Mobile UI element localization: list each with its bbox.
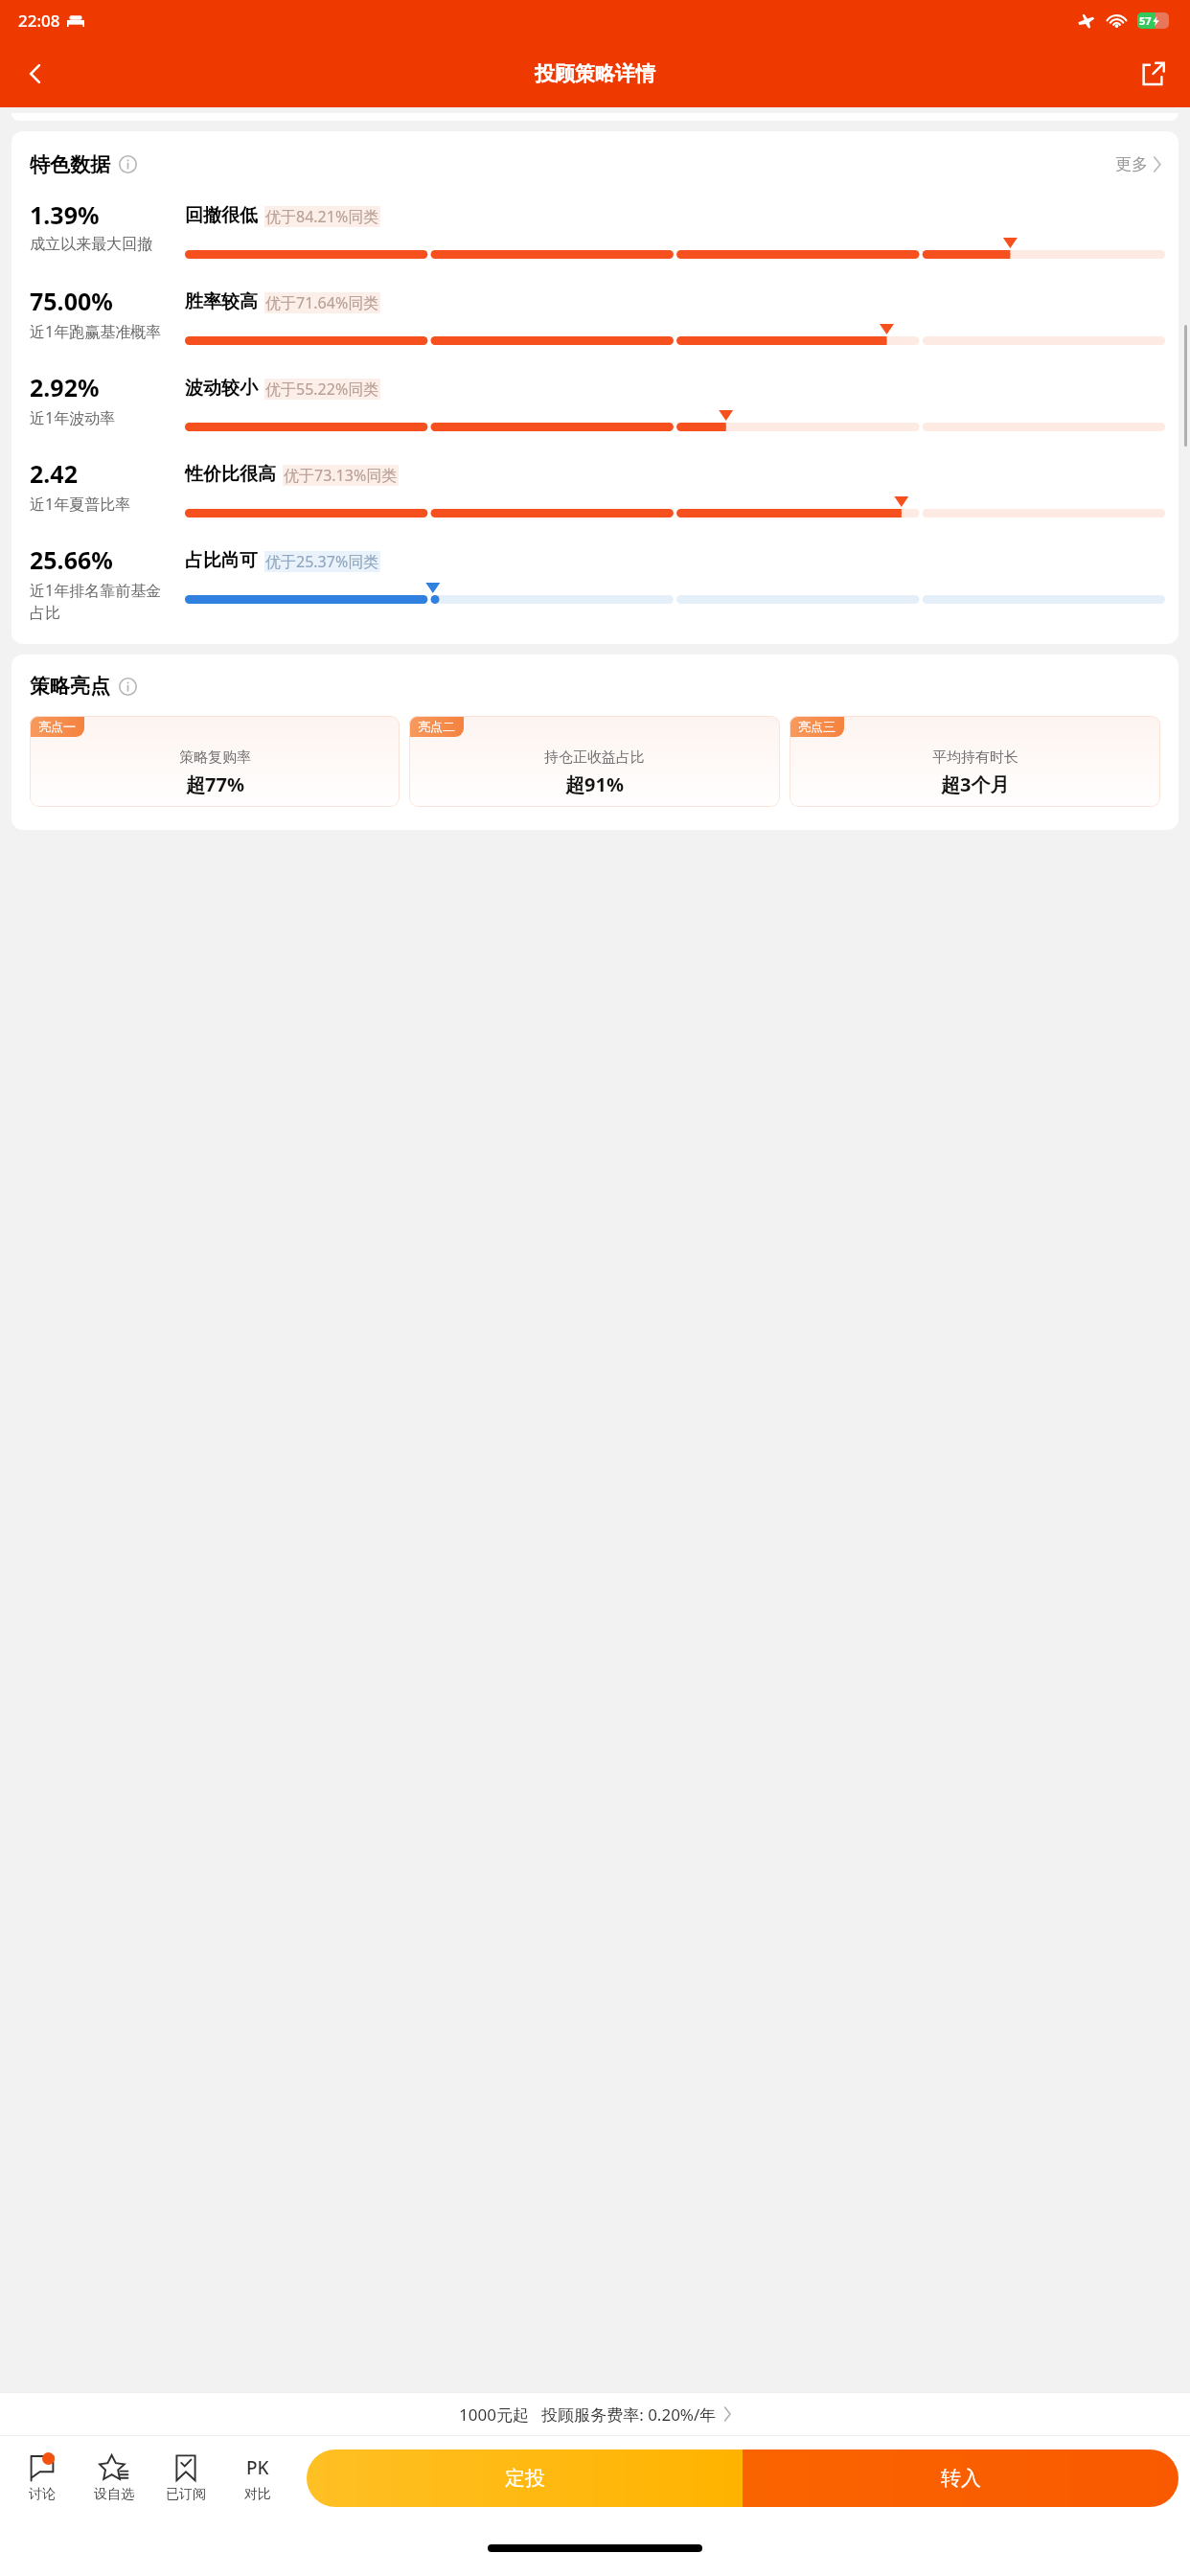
button[interactable]: Share (1127, 48, 1179, 100)
button[interactable]: 2.92% (30, 371, 1165, 431)
staticText: 定投 (505, 2466, 545, 2491)
button[interactable]: 2.42 (30, 457, 1165, 517)
staticText: 优于73.13%同类 (284, 465, 398, 486)
button[interactable]: Info (119, 678, 137, 696)
button[interactable]: 转入 (743, 2449, 1179, 2507)
staticText: 回撤很低 (185, 204, 258, 227)
button[interactable]: Info (119, 155, 137, 173)
staticText: 2.92% (30, 371, 100, 403)
staticText: 57 (1139, 13, 1152, 28)
staticText: 近1年波动率 (30, 407, 116, 428)
staticText: 2.42 (30, 457, 78, 490)
staticText: 亮点二 (418, 719, 455, 734)
staticText: 策略亮点 (30, 674, 110, 699)
staticText: 策略复购率 (179, 748, 251, 767)
staticText: 持仓正收益占比 (544, 748, 645, 767)
button[interactable]: 亮点一 (30, 716, 400, 807)
staticText: 22:08 (18, 10, 60, 32)
staticText: PK (246, 2455, 269, 2480)
staticText: 特色数据 (30, 152, 110, 177)
staticText: 波动较小 (185, 377, 258, 400)
staticText: 亮点一 (38, 719, 76, 734)
staticText: 性价比很高 (185, 463, 276, 486)
staticText: 投顾策略详情 (535, 61, 655, 86)
staticText: 更多 (1115, 154, 1148, 174)
staticText: 优于25.37%同类 (265, 551, 379, 572)
staticText: 胜率较高 (185, 290, 258, 313)
staticText: 1000元起 投顾服务费率: 0.20%/年 (459, 2403, 717, 2426)
staticText: 转入 (941, 2466, 981, 2491)
button[interactable]: 亮点三 (790, 716, 1160, 807)
staticText: 设自选 (94, 2486, 134, 2503)
staticText: 对比 (244, 2486, 271, 2503)
staticText: 超77% (186, 771, 244, 797)
staticText: 25.66% (30, 543, 113, 576)
staticText: 成立以来最大回撤 (30, 235, 152, 254)
button[interactable]: 1000元起 投顾服务费率: 0.20%/年 (0, 2393, 1190, 2435)
staticText: 优于71.64%同类 (265, 292, 379, 313)
staticText: 占比尚可 (185, 549, 258, 572)
staticText: 超91% (565, 771, 624, 797)
staticText: 优于84.21%同类 (265, 206, 379, 227)
staticText: 超3个月 (941, 771, 1010, 797)
staticText: 75.00% (30, 285, 113, 317)
staticText: 近1年排名靠前基金占比 (30, 580, 173, 623)
staticText: 已订阅 (166, 2486, 206, 2503)
button[interactable]: 更多 (1111, 150, 1165, 178)
staticText: 平均持有时长 (932, 748, 1018, 767)
staticText: 近1年夏普比率 (30, 494, 131, 515)
staticText: 讨论 (29, 2486, 56, 2503)
staticText: 1.39% (30, 198, 100, 231)
staticText: 亮点三 (798, 719, 835, 734)
button[interactable]: 设自选 (78, 2449, 149, 2507)
button[interactable]: Back (10, 48, 61, 100)
button[interactable]: PK (221, 2449, 293, 2507)
staticText: 近1年跑赢基准概率 (30, 321, 162, 342)
button[interactable]: 25.66% (30, 543, 1165, 623)
button[interactable]: 已订阅 (149, 2449, 221, 2507)
button[interactable]: 讨论 (6, 2449, 78, 2507)
button[interactable]: 亮点二 (409, 716, 780, 807)
staticText: 优于55.22%同类 (265, 379, 379, 400)
button[interactable]: 定投 (307, 2449, 743, 2507)
button[interactable]: 75.00% (30, 285, 1165, 345)
button[interactable]: 1.39% (30, 198, 1165, 259)
